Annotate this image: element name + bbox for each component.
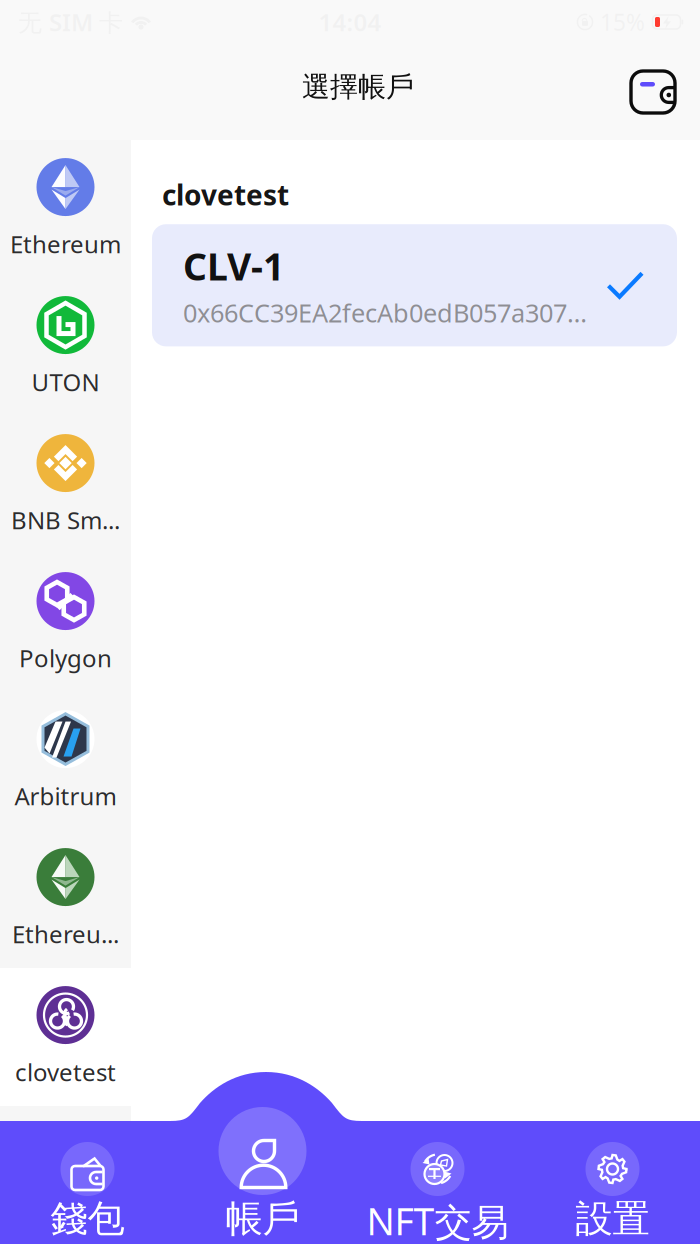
staticText: 設置 (575, 1196, 649, 1242)
button[interactable]: Wallet (616, 62, 690, 122)
button[interactable]: Ethereu... (0, 830, 131, 968)
staticText: Arbitrum (14, 780, 116, 812)
staticText: NFT交易 (366, 1196, 508, 1244)
staticText: UTON (31, 366, 99, 398)
button[interactable]: Ethereum (0, 140, 131, 278)
button[interactable]: NFT交易 (350, 1072, 525, 1244)
staticText: clovetest (162, 176, 289, 213)
button[interactable]: Arbitrum (0, 692, 131, 830)
button[interactable]: CLV-1 (152, 224, 677, 346)
staticText: 選擇帳戶 (302, 70, 414, 104)
button[interactable]: BNB Sm... (0, 416, 131, 554)
staticText: 0x66CC39EA2fecAb0edB057a3079... (183, 296, 599, 329)
button[interactable]: 設置 (525, 1072, 700, 1244)
button[interactable]: 帳戶 (175, 1072, 350, 1244)
button[interactable]: Polygon (0, 554, 131, 692)
staticText: CLV-1 (183, 241, 284, 291)
button[interactable]: 錢包 (0, 1072, 175, 1244)
staticText: BNB Sm... (11, 504, 120, 536)
button[interactable]: UTON (0, 278, 131, 416)
staticText: Ethereu... (12, 918, 119, 950)
staticText: Ethereum (10, 228, 121, 260)
staticText: clovetest (15, 1056, 116, 1088)
button[interactable]: clovetest (0, 968, 131, 1106)
staticText: 帳戶 (225, 1196, 299, 1242)
staticText: Polygon (19, 642, 112, 674)
staticText: 錢包 (50, 1196, 124, 1242)
